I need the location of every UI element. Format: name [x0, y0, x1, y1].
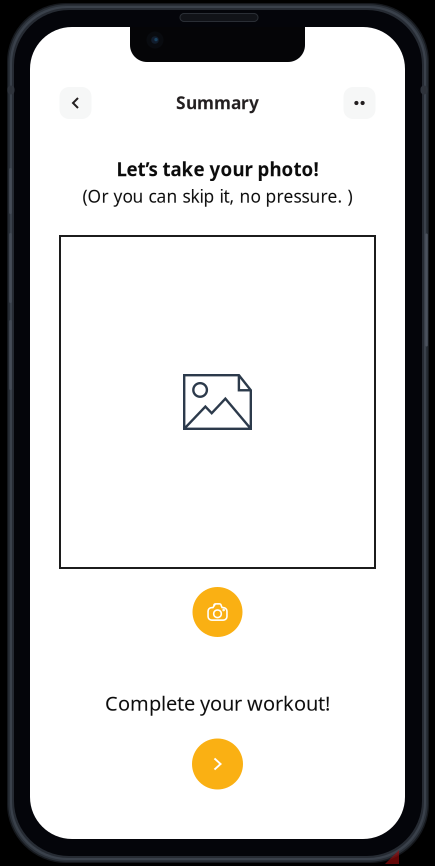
staticText: (Or you can skip it, no pressure. ) — [82, 184, 352, 207]
staticText: Summary — [176, 91, 259, 114]
button[interactable]: More options — [343, 87, 375, 119]
staticText: Let’s take your photo! — [116, 157, 318, 181]
staticText: Complete your workout! — [105, 690, 330, 716]
button[interactable]: Back — [59, 87, 91, 119]
button[interactable]: Take photo — [192, 587, 242, 637]
button[interactable]: Continue — [192, 738, 243, 789]
